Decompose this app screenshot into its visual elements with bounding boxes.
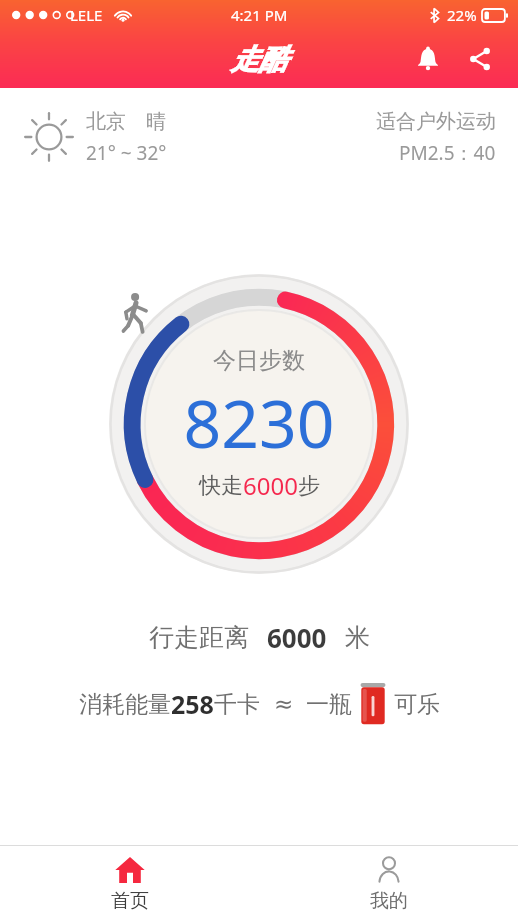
staticText: 北京 [86,109,126,134]
staticText: 21° ~ 32° [86,140,167,166]
button[interactable]: 消耗能量 [79,683,440,725]
staticText: PM2.5：40 [399,140,496,166]
staticText: 行走距离 [149,622,249,653]
staticText: 首页 [111,889,149,913]
staticText: 我的 [370,889,408,913]
staticText: 今日步数 [213,346,305,375]
staticText: 22% [447,5,477,25]
staticText: 258 [171,687,214,721]
button[interactable]: 首页 [0,846,259,920]
staticText: 一瓶 [306,690,352,719]
staticText: LELE [70,5,103,25]
staticText: 米 [345,622,370,653]
staticText: 适合户外运动 [376,109,496,134]
staticText: 6000 [267,620,327,655]
staticText: 6000 [243,469,298,502]
staticText: 晴 [146,109,166,134]
staticText: 消耗能量 [79,690,171,719]
button[interactable]: 北京 [0,88,518,186]
button[interactable]: 行走距离 [149,620,370,655]
staticText: ≈ [274,691,294,718]
staticText: 走酷 [231,42,287,77]
button[interactable]: 我的 [259,846,518,920]
staticText: 千卡 [214,690,260,719]
staticText: 快走 [199,472,243,500]
staticText: 8230 [183,377,335,467]
staticText: 4:21 PM [231,5,288,25]
staticText: 步 [298,472,320,500]
staticText: 可乐 [394,690,440,719]
button[interactable]: 今日步数 [109,274,409,574]
button[interactable]: Notifications [406,37,450,81]
button[interactable]: Share [458,37,502,81]
